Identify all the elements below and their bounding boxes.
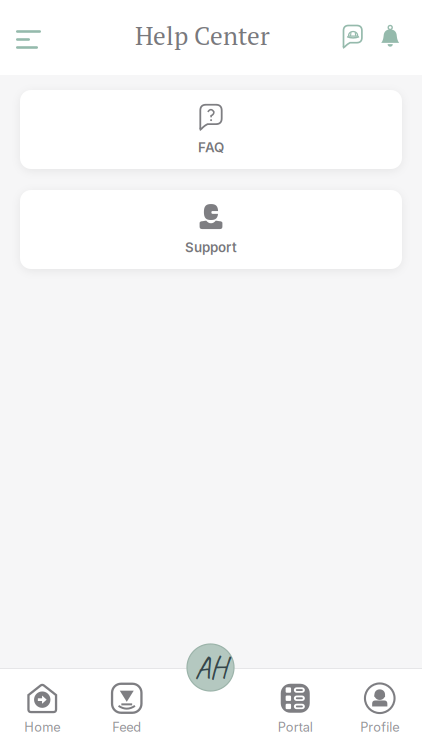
button[interactable]: Menu — [0, 0, 57, 75]
staticText: Home — [24, 719, 60, 735]
button[interactable]: FAQ — [20, 90, 402, 169]
button[interactable]: Messages — [330, 0, 370, 75]
button[interactable]: Support — [20, 190, 402, 269]
staticText: AH — [194, 648, 226, 687]
button[interactable]: Notifications — [370, 0, 411, 75]
staticText: Profile — [360, 719, 399, 735]
staticText: FAQ — [198, 139, 224, 155]
staticText: Portal — [278, 719, 313, 735]
button[interactable]: Feed — [84, 668, 169, 750]
button[interactable]: Home — [187, 644, 234, 691]
button[interactable]: Profile — [337, 668, 422, 750]
staticText: Feed — [112, 719, 141, 735]
button[interactable]: Portal — [253, 668, 337, 750]
staticText: Support — [185, 239, 237, 255]
button[interactable]: Home — [0, 668, 84, 750]
staticText: Help Center — [135, 19, 270, 52]
